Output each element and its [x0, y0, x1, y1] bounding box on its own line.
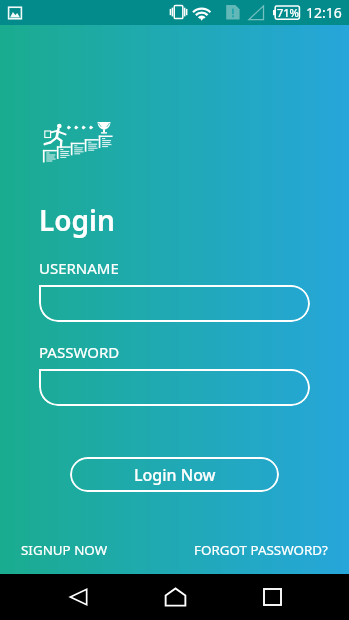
- button[interactable]: Home: [145, 574, 205, 620]
- staticText: Login Now: [134, 464, 216, 486]
- staticText: USERNAME: [39, 258, 119, 278]
- staticText: SIGNUP NOW: [21, 541, 108, 559]
- staticText: Login: [39, 201, 115, 239]
- staticText: 12:16: [306, 3, 342, 22]
- button[interactable]: Recent apps: [242, 574, 302, 620]
- staticText: 71%: [277, 5, 299, 20]
- other: Screenshot notification: [7, 5, 23, 21]
- staticText: FORGOT PASSWORD?: [194, 541, 328, 559]
- staticText: PASSWORD: [39, 342, 120, 362]
- button[interactable]: FORGOT PASSWORD?: [194, 541, 328, 559]
- button[interactable]: SIGNUP NOW: [21, 541, 108, 559]
- button[interactable]: Login Now: [70, 457, 279, 492]
- button[interactable]: [39, 369, 310, 406]
- other: Logo: [42, 121, 113, 161]
- button[interactable]: [39, 285, 310, 322]
- button[interactable]: Back: [48, 574, 108, 620]
